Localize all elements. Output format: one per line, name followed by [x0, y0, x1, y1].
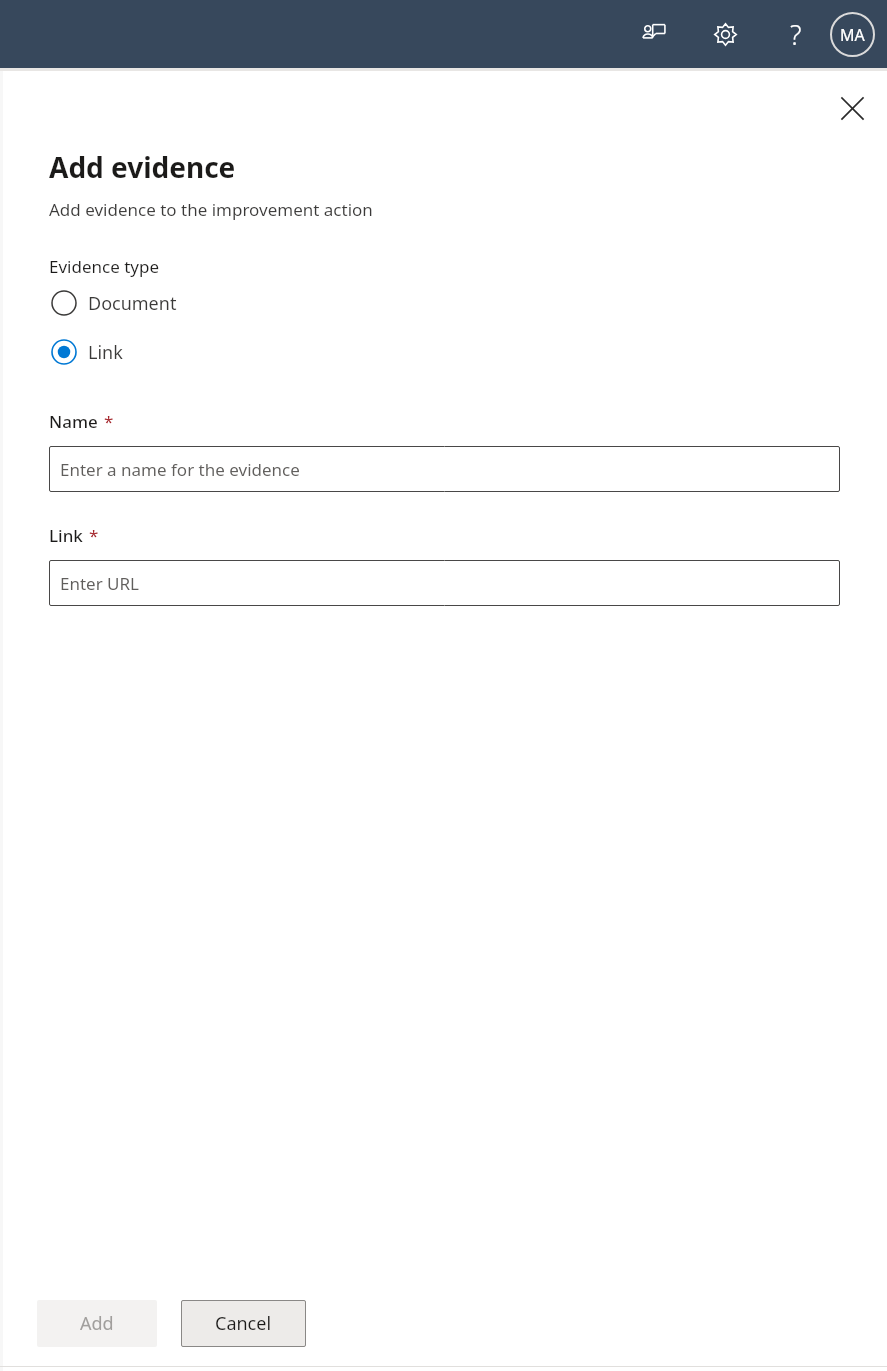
button[interactable]: Help	[774, 12, 818, 56]
staticText: Add	[80, 1311, 114, 1336]
button[interactable]: Close	[827, 83, 877, 133]
staticText: Add evidence	[49, 148, 236, 186]
staticText: Enter a name for the evidence	[60, 458, 300, 481]
staticText: Evidence type	[49, 255, 160, 278]
staticText: Enter URL	[60, 572, 140, 595]
button[interactable]: Document	[49, 288, 177, 318]
staticText: *	[89, 524, 99, 547]
button[interactable]: Feedback	[632, 12, 676, 56]
staticText: Cancel	[215, 1311, 272, 1336]
staticText: MA	[840, 24, 865, 46]
staticText: Document	[88, 291, 177, 316]
staticText: ?	[790, 16, 802, 53]
button[interactable]: Link	[49, 337, 123, 367]
button[interactable]: Add	[37, 1300, 157, 1347]
staticText: Link	[88, 340, 123, 365]
staticText: Name	[49, 410, 98, 433]
button[interactable]: Settings	[703, 12, 747, 56]
staticText: Add evidence to the improvement action	[49, 198, 373, 221]
staticText: *	[104, 410, 114, 433]
button[interactable]: Enter URL	[49, 560, 840, 606]
button[interactable]: Enter a name for the evidence	[49, 446, 840, 492]
button[interactable]: Account MA	[828, 10, 876, 58]
staticText: Link	[49, 524, 83, 547]
button[interactable]: Cancel	[181, 1300, 306, 1347]
